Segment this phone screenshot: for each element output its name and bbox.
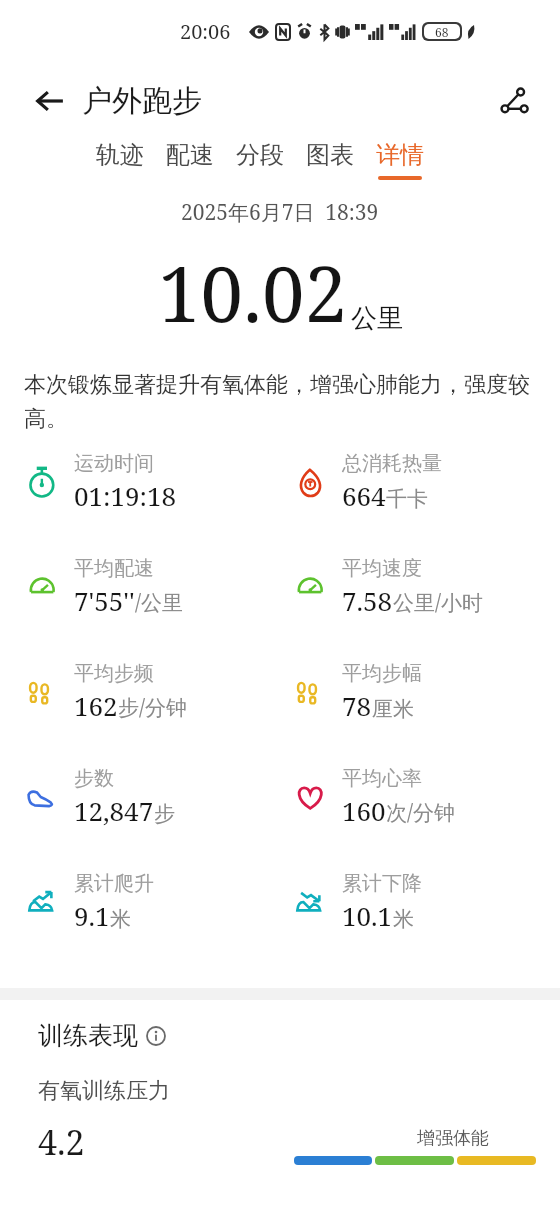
staticText: 户外跑步: [82, 82, 202, 120]
staticText: 7.58: [342, 583, 393, 618]
button[interactable]: 累计爬升: [24, 871, 292, 933]
staticText: 步: [154, 801, 175, 827]
button[interactable]: 平均步幅: [292, 661, 560, 723]
staticText: 米: [393, 906, 414, 932]
staticText: 分段: [236, 140, 284, 170]
staticText: 68: [435, 24, 449, 39]
staticText: 平均步幅: [342, 661, 422, 686]
button[interactable]: 训练表现: [38, 1020, 166, 1051]
button[interactable]: 轨迹: [96, 140, 144, 180]
staticText: 累计爬升: [74, 871, 154, 896]
staticText: 10.1: [342, 898, 393, 933]
staticText: 78: [342, 688, 372, 723]
staticText: 千卡: [386, 486, 428, 512]
staticText: 步/分钟: [118, 693, 188, 722]
button[interactable]: 平均配速: [24, 556, 292, 618]
button[interactable]: 平均心率: [292, 766, 560, 828]
staticText: 9.1: [74, 898, 110, 933]
staticText: 平均配速: [74, 556, 154, 581]
staticText: 图表: [306, 140, 354, 170]
staticText: 轨迹: [96, 140, 144, 170]
staticText: 平均心率: [342, 766, 422, 791]
button[interactable]: 详情: [376, 140, 424, 180]
staticText: 运动时间: [74, 451, 154, 476]
staticText: 平均速度: [342, 556, 422, 581]
button[interactable]: 运动时间: [24, 451, 292, 513]
staticText: 162: [74, 688, 118, 723]
staticText: 米: [110, 906, 131, 932]
staticText: 累计下降: [342, 871, 422, 896]
staticText: 公里/小时: [393, 588, 484, 617]
button[interactable]: Back: [30, 81, 70, 121]
staticText: 2025年6月7日 18:39: [181, 198, 379, 227]
button[interactable]: 总消耗热量: [292, 451, 560, 513]
staticText: 本次锻炼显著提升有氧体能，增强心肺能力，强度较高。: [24, 371, 540, 433]
staticText: /公里: [135, 588, 184, 617]
staticText: 7'55'': [74, 583, 135, 618]
staticText: 训练表现: [38, 1020, 138, 1051]
staticText: 次/分钟: [386, 798, 456, 827]
staticText: 步数: [74, 766, 114, 791]
button[interactable]: 分段: [236, 140, 284, 180]
button[interactable]: Share: [492, 79, 536, 123]
staticText: 配速: [166, 140, 214, 170]
staticText: 有氧训练压力: [38, 1077, 170, 1105]
staticText: 10.02: [158, 241, 347, 345]
staticText: 664: [342, 478, 386, 513]
button[interactable]: 平均速度: [292, 556, 560, 618]
button[interactable]: 平均步频: [24, 661, 292, 723]
staticText: 详情: [376, 140, 424, 170]
button[interactable]: 累计下降: [292, 871, 560, 933]
staticText: 增强体能: [417, 1127, 489, 1150]
button[interactable]: 配速: [166, 140, 214, 180]
staticText: 20:06: [180, 18, 231, 45]
staticText: 01:19:18: [74, 478, 177, 513]
button[interactable]: 步数: [24, 766, 292, 828]
staticText: 平均步频: [74, 661, 154, 686]
staticText: 12,847: [74, 793, 154, 828]
staticText: 4.2: [38, 1119, 85, 1165]
staticText: 160: [342, 793, 386, 828]
staticText: 总消耗热量: [342, 451, 442, 476]
staticText: 公里: [351, 302, 403, 335]
button[interactable]: 图表: [306, 140, 354, 180]
staticText: 厘米: [372, 696, 414, 722]
